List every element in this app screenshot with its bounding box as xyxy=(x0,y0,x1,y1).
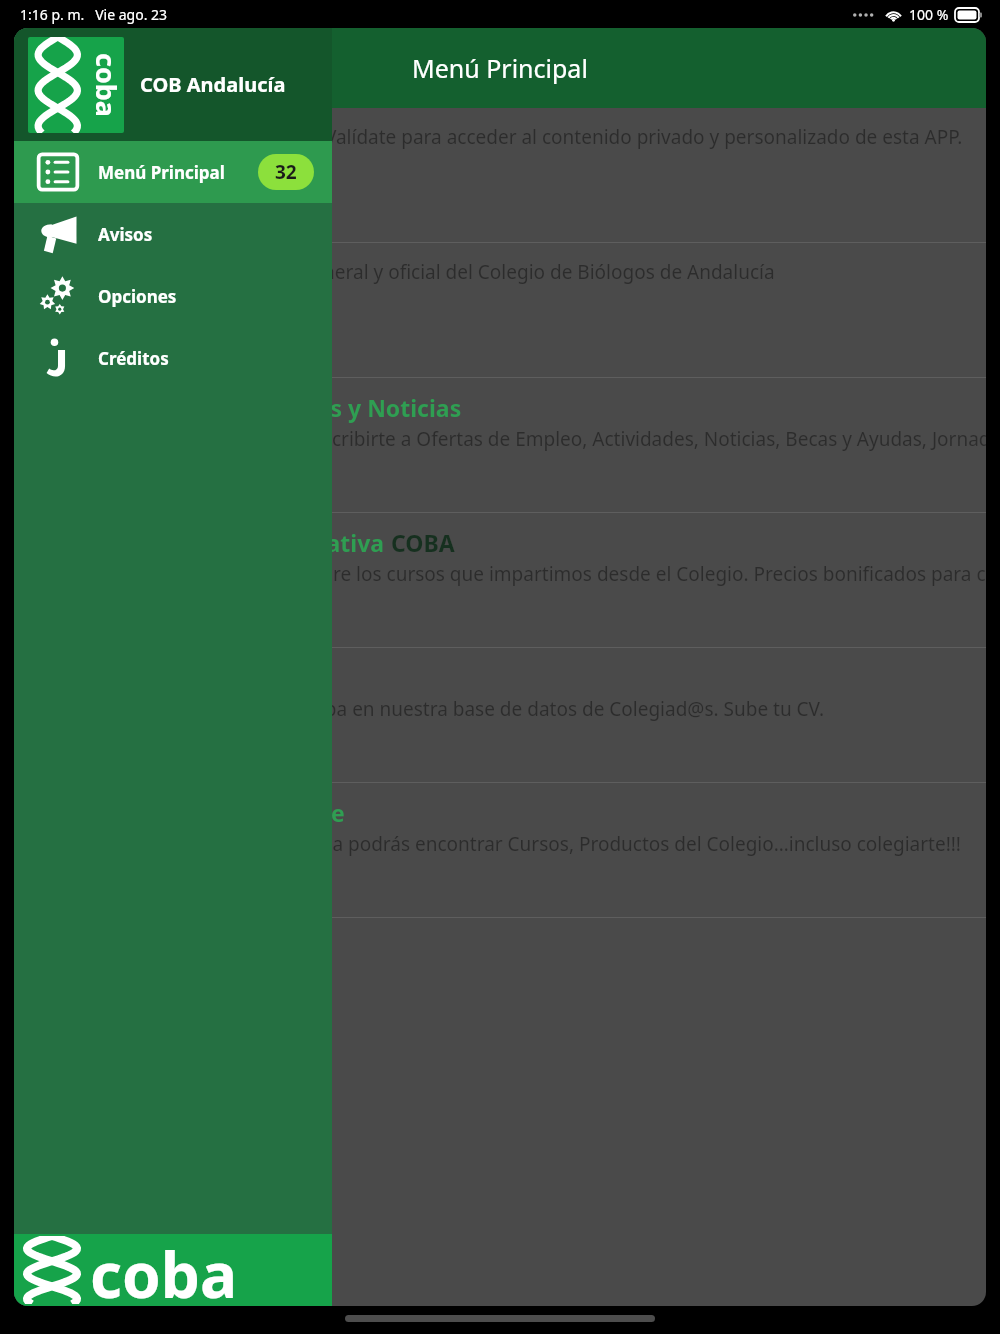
staticText: En nuestra tienda podrás encontrar Curso… xyxy=(186,831,961,857)
staticText: Tienda Online xyxy=(186,797,345,828)
button[interactable]: 2 xyxy=(14,648,986,782)
button[interactable]: Menú Principal xyxy=(14,141,332,203)
staticText: ahora DIGITAL. Valídate para acceder al … xyxy=(186,124,963,150)
staticText: Menú Principal xyxy=(98,161,225,184)
button[interactable]: Información general y oficial del Colegi… xyxy=(14,243,986,377)
staticText: Avisos xyxy=(98,223,153,246)
staticText: Suscripciones y Noticias xyxy=(186,392,462,423)
button[interactable]: 7 xyxy=(14,513,986,647)
button[interactable]: coba xyxy=(14,28,332,141)
staticText: 1:16 p. m. Vie ago. 23 xyxy=(20,5,168,24)
button[interactable]: Opciones xyxy=(14,265,332,327)
button[interactable]: ahora DIGITAL. Valídate para acceder al … xyxy=(14,108,986,242)
staticText: COB Andalucía xyxy=(140,71,286,98)
staticText: 32 xyxy=(275,159,297,185)
staticText: Accede y Participa en nuestra base de da… xyxy=(186,696,825,722)
button[interactable]: 11 xyxy=(14,378,986,512)
staticText: COBA xyxy=(391,527,455,558)
staticText: coba xyxy=(88,53,124,118)
staticText: Opciones xyxy=(98,285,177,308)
staticText: Oferta Formativa xyxy=(186,527,391,558)
staticText: Aquí puedes suscribirte a Ofertas de Emp… xyxy=(186,426,986,452)
button[interactable]: Avisos xyxy=(14,203,332,265)
staticText: Menú Principal xyxy=(412,51,588,85)
staticText: 100 % xyxy=(909,5,949,24)
staticText: Información general y oficial del Colegi… xyxy=(186,259,775,285)
button[interactable]: coba xyxy=(14,1234,332,1306)
button[interactable]: 7 xyxy=(14,783,986,917)
staticText: coba xyxy=(90,1232,238,1304)
staticText: Información sobre los cursos que imparti… xyxy=(186,561,986,587)
button[interactable]: Abrir menú xyxy=(36,40,92,96)
button[interactable]: Créditos xyxy=(14,327,332,389)
staticText: Créditos xyxy=(98,347,169,370)
